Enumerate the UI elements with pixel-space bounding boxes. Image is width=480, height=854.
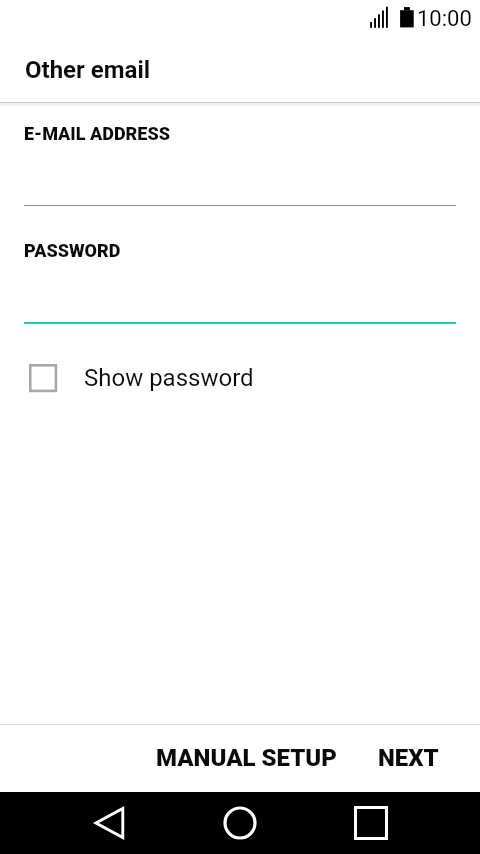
staticText: NEXT: [378, 744, 439, 772]
staticText: Show password: [84, 364, 254, 392]
button[interactable]: Show password: [23, 356, 260, 400]
staticText: PASSWORD: [24, 240, 121, 261]
button[interactable]: Back: [78, 792, 140, 854]
button[interactable]: Home: [209, 792, 271, 854]
staticText: Other email: [25, 56, 151, 84]
button[interactable]: Recent apps: [340, 792, 402, 854]
button[interactable]: MANUAL SETUP: [141, 733, 352, 783]
staticText: E-MAIL ADDRESS: [24, 123, 170, 144]
button[interactable]: NEXT: [363, 733, 454, 783]
staticText: 10:00: [417, 6, 472, 32]
staticText: MANUAL SETUP: [156, 744, 337, 772]
